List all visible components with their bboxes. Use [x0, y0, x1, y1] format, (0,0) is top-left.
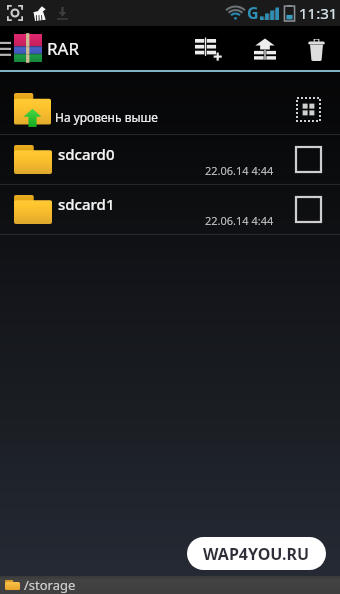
staticText: 11:31: [299, 3, 338, 23]
button[interactable]: /storage: [0, 576, 340, 594]
button[interactable]: Select sdcard0: [296, 147, 321, 172]
button[interactable]: sdcard0: [0, 135, 340, 184]
staticText: G: [247, 2, 259, 24]
staticText: На уровень выше: [55, 109, 158, 125]
button[interactable]: sdcard1: [0, 185, 340, 234]
staticText: 22.06.14 4:44: [205, 163, 274, 178]
staticText: WAP4YOU.RU: [203, 543, 310, 565]
button[interactable]: Select all: [296, 97, 321, 122]
staticText: 22.06.14 4:44: [205, 213, 274, 228]
staticText: sdcard0: [58, 144, 115, 164]
staticText: RAR: [47, 37, 80, 60]
button[interactable]: Add to archive: [188, 26, 234, 70]
button[interactable]: На уровень выше: [0, 85, 340, 134]
staticText: sdcard1: [58, 194, 115, 214]
button[interactable]: Open navigation menu: [0, 34, 86, 62]
button[interactable]: WAP4YOU.RU: [187, 537, 326, 570]
button[interactable]: Extract: [242, 26, 288, 70]
button[interactable]: Select sdcard1: [296, 197, 321, 222]
button[interactable]: Delete: [296, 26, 336, 70]
staticText: /storage: [24, 576, 76, 594]
